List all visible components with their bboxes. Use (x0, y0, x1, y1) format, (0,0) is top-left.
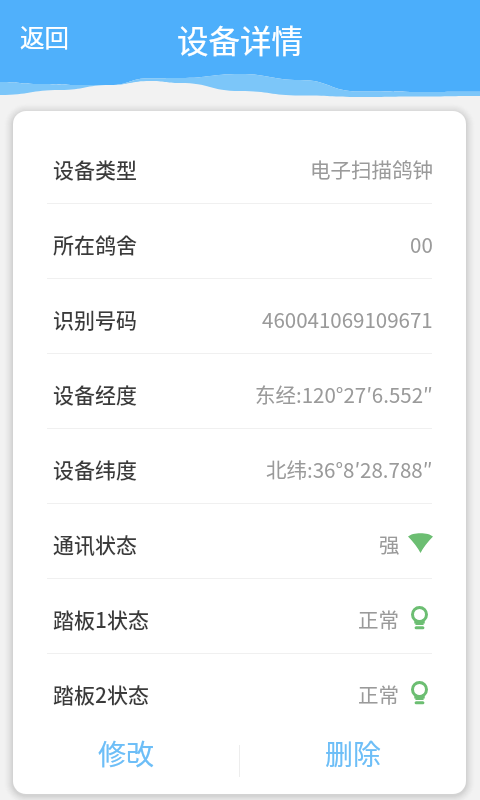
staticText: 460041069109671 (262, 304, 433, 334)
staticText: 踏板1状态 (53, 604, 149, 634)
button[interactable]: 修改 (13, 728, 239, 794)
staticText: 通讯状态 (53, 529, 137, 559)
staticText: 东经:120°27′6.552″ (255, 379, 433, 409)
staticText: 正常 (358, 604, 399, 634)
button[interactable]: 踏板1状态 (53, 579, 428, 653)
staticText: 删除 (325, 733, 382, 774)
staticText: 设备经度 (53, 379, 137, 409)
staticText: 识别号码 (53, 304, 137, 334)
staticText: 设备纬度 (53, 454, 137, 484)
staticText: 北纬:36°8′28.788″ (266, 454, 433, 484)
staticText: 踏板2状态 (53, 679, 149, 709)
button[interactable]: 删除 (240, 728, 466, 794)
button[interactable]: 踏板2状态 (53, 654, 428, 728)
other: 踏板状态 (411, 681, 428, 704)
staticText: 电子扫描鸽钟 (310, 154, 433, 184)
button[interactable]: 通讯状态 (53, 504, 433, 578)
staticText: 所在鸽舍 (53, 229, 137, 259)
staticText: 修改 (98, 733, 155, 774)
other: 信号强度 (408, 533, 433, 553)
staticText: 设备详情 (177, 16, 304, 62)
button[interactable]: 设备纬度 (53, 429, 433, 503)
staticText: 00 (410, 229, 433, 259)
staticText: 设备类型 (53, 154, 137, 184)
staticText: 正常 (358, 679, 399, 709)
other: 踏板状态 (411, 606, 428, 629)
button[interactable]: 设备经度 (53, 354, 433, 428)
button[interactable]: 所在鸽舍 (53, 204, 433, 278)
button[interactable]: 设备类型 (53, 129, 433, 203)
staticText: 返回 (20, 19, 69, 54)
button[interactable]: 识别号码 (53, 279, 433, 353)
button[interactable]: 返回 (20, 19, 69, 54)
staticText: 强 (379, 529, 400, 559)
